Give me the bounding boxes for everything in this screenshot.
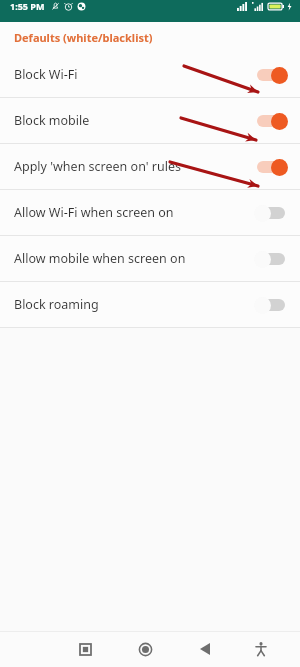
button[interactable]: Back xyxy=(190,634,220,664)
button[interactable]: Off xyxy=(254,293,288,317)
button[interactable]: Allow Wi-Fi when screen on xyxy=(0,190,300,235)
button[interactable]: Off xyxy=(254,201,288,225)
staticText: Block roaming xyxy=(14,296,254,313)
staticText: Allow mobile when screen on xyxy=(14,250,254,267)
button[interactable]: Recents xyxy=(70,634,100,664)
staticText: 1:55 PM xyxy=(10,0,45,12)
staticText: Apply 'when screen on' rules xyxy=(14,158,254,175)
button[interactable]: Apply 'when screen on' rules xyxy=(0,144,300,189)
button[interactable]: Home xyxy=(130,634,160,664)
button[interactable]: On xyxy=(254,155,288,179)
button[interactable]: Accessibility xyxy=(246,634,276,664)
button[interactable]: Off xyxy=(254,247,288,271)
staticText: Block Wi-Fi xyxy=(14,66,254,83)
button[interactable]: Allow mobile when screen on xyxy=(0,236,300,281)
button[interactable]: Block Wi-Fi xyxy=(0,52,300,97)
staticText: Defaults (white/blacklist) xyxy=(14,30,153,45)
button[interactable]: Block roaming xyxy=(0,282,300,327)
button[interactable]: On xyxy=(254,109,288,133)
staticText: Allow Wi-Fi when screen on xyxy=(14,204,254,221)
staticText: Block mobile xyxy=(14,112,254,129)
button[interactable]: Block mobile xyxy=(0,98,300,143)
button[interactable]: On xyxy=(254,63,288,87)
